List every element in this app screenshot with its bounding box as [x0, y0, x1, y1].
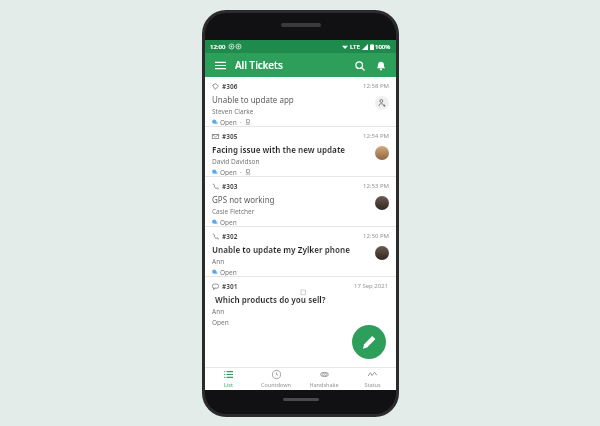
staticText: 12:50 PM: [363, 232, 389, 240]
staticText: Open: [220, 268, 237, 276]
staticText: 12:00: [210, 43, 226, 51]
staticText: List: [224, 381, 233, 388]
staticText: Unable to update my Zylker phone: [212, 244, 350, 255]
staticText: #306: [222, 82, 238, 91]
staticText: Steven Clarke: [212, 107, 254, 116]
staticText: 17 Sep 2021: [354, 282, 389, 290]
staticText: Open: [220, 168, 237, 176]
button[interactable]: #306: [205, 77, 396, 126]
staticText: 12:54 PM: [363, 132, 389, 140]
staticText: 12:53 PM: [363, 182, 389, 190]
button[interactable]: Status: [348, 368, 396, 390]
staticText: Which products do you sell?: [215, 294, 326, 305]
button[interactable]: Search: [351, 57, 368, 74]
staticText: 12:58 PM: [363, 82, 389, 90]
button[interactable]: Compose new ticket: [352, 325, 386, 359]
staticText: Countdown: [261, 381, 291, 388]
staticText: ·: [240, 118, 242, 126]
staticText: Status: [364, 381, 381, 388]
button[interactable]: Notifications: [372, 57, 389, 74]
staticText: #305: [222, 132, 238, 141]
staticText: David Davidson: [212, 157, 260, 166]
staticText: Casie Fletcher: [212, 207, 255, 216]
staticText: Unable to update app: [212, 94, 294, 105]
staticText: 100%: [375, 43, 391, 51]
staticText: LTE: [350, 43, 360, 51]
button[interactable]: Handshake: [300, 368, 348, 390]
staticText: Open: [220, 118, 237, 126]
button[interactable]: #305: [205, 127, 396, 176]
staticText: Ann: [212, 257, 225, 266]
button[interactable]: #303: [205, 177, 396, 226]
button[interactable]: #302: [205, 227, 396, 276]
button[interactable]: #301: [205, 277, 396, 326]
staticText: #301: [222, 282, 238, 291]
staticText: Facing issue with the new update: [212, 144, 346, 155]
staticText: #302: [222, 232, 238, 241]
staticText: GPS not working: [212, 194, 275, 205]
staticText: Open: [220, 218, 237, 226]
button[interactable]: List: [205, 368, 252, 390]
staticText: Open: [212, 318, 229, 326]
staticText: Handshake: [309, 381, 339, 388]
button[interactable]: Open navigation menu: [212, 57, 228, 73]
staticText: ·: [240, 168, 242, 176]
staticText: #303: [222, 182, 238, 191]
staticText: Ann: [212, 307, 225, 316]
button[interactable]: Countdown: [252, 368, 300, 390]
staticText: All Tickets: [235, 58, 283, 72]
